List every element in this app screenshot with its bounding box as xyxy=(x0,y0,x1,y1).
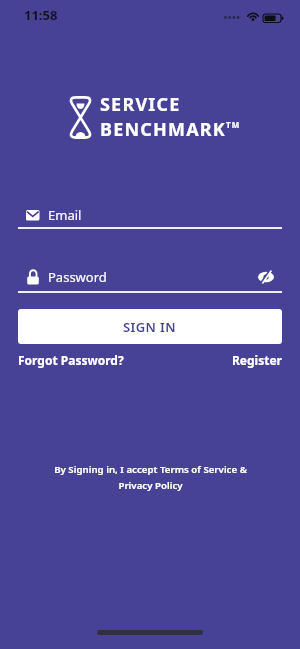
button[interactable]: SIGN IN xyxy=(18,309,282,344)
staticText: 11:58 xyxy=(24,6,58,24)
staticText: By Signing in, I accept Terms of Service… xyxy=(54,463,247,491)
staticText: Email xyxy=(48,206,82,224)
staticText: SERVICE xyxy=(100,92,181,117)
staticText: Password xyxy=(48,268,107,286)
button[interactable]: Forgot Password? xyxy=(18,352,124,368)
staticText: SIGN IN xyxy=(123,318,177,336)
button[interactable]: Email xyxy=(26,203,282,227)
button[interactable]: Password xyxy=(26,265,274,289)
button[interactable]: Register xyxy=(232,352,282,368)
button[interactable] xyxy=(258,270,274,284)
staticText: BENCHMARKTM xyxy=(100,117,241,142)
